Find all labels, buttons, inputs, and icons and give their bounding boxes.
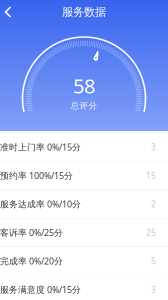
staticText: 准时上门率 0%/15分 <box>0 141 81 153</box>
button[interactable]: 服务满意度 0%/15分 <box>0 275 168 300</box>
staticText: 15 <box>146 170 156 181</box>
staticText: 58 <box>73 72 95 99</box>
staticText: 完成率 0%/20分 <box>0 255 63 267</box>
staticText: 2 <box>151 198 156 210</box>
button[interactable]: 服务达成率 0%/10分 <box>0 190 168 218</box>
staticText: 总评分 <box>70 100 97 111</box>
button[interactable]: 返回 <box>0 0 24 24</box>
staticText: 服务满意度 0%/15分 <box>0 283 81 295</box>
staticText: 服务数据 <box>62 5 106 19</box>
button[interactable]: 完成率 0%/20分 <box>0 247 168 275</box>
button[interactable]: 预约率 100%/15分 <box>0 161 168 189</box>
button[interactable]: 客诉率 0%/25分 <box>0 218 168 246</box>
staticText: 3 <box>151 141 156 153</box>
staticText: 3 <box>151 284 156 295</box>
staticText: 25 <box>146 227 156 238</box>
staticText: 预约率 100%/15分 <box>0 169 73 181</box>
staticText: 服务达成率 0%/10分 <box>0 198 81 210</box>
button[interactable]: 准时上门率 0%/15分 <box>0 133 168 161</box>
staticText: 客诉率 0%/25分 <box>0 226 63 238</box>
staticText: 5 <box>151 255 156 267</box>
